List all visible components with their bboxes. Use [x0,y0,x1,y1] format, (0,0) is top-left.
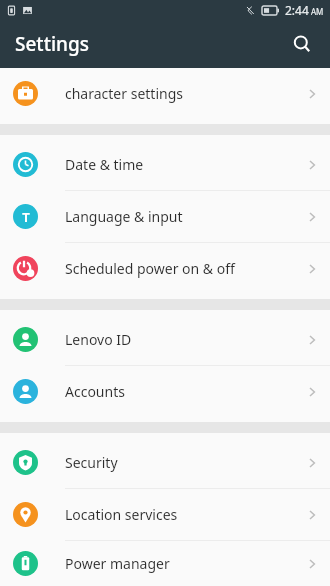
staticText: AM [311,6,324,17]
button[interactable]: Power manager [0,541,330,586]
button[interactable]: T [0,191,330,243]
button[interactable]: Location services [0,489,330,541]
staticText: 2:44 [285,2,309,18]
staticText: Location services [65,505,302,524]
staticText: Date & time [65,155,302,174]
button[interactable]: Lenovo ID [0,314,330,366]
staticText: Accounts [65,382,302,401]
staticText: Lenovo ID [65,330,302,349]
staticText: Language & input [65,207,302,226]
staticText: Power manager [65,554,302,573]
button[interactable]: Accounts [0,366,330,417]
button[interactable]: Security [0,437,330,489]
staticText: character settings [65,84,302,103]
staticText: Scheduled power on & off [65,259,302,278]
button[interactable]: Search [284,26,320,62]
staticText: T [22,208,30,226]
button[interactable]: character settings [0,68,330,119]
staticText: Settings [15,31,89,57]
staticText: Security [65,453,302,472]
button[interactable]: Date & time [0,139,330,191]
button[interactable]: Scheduled power on & off [0,243,330,294]
